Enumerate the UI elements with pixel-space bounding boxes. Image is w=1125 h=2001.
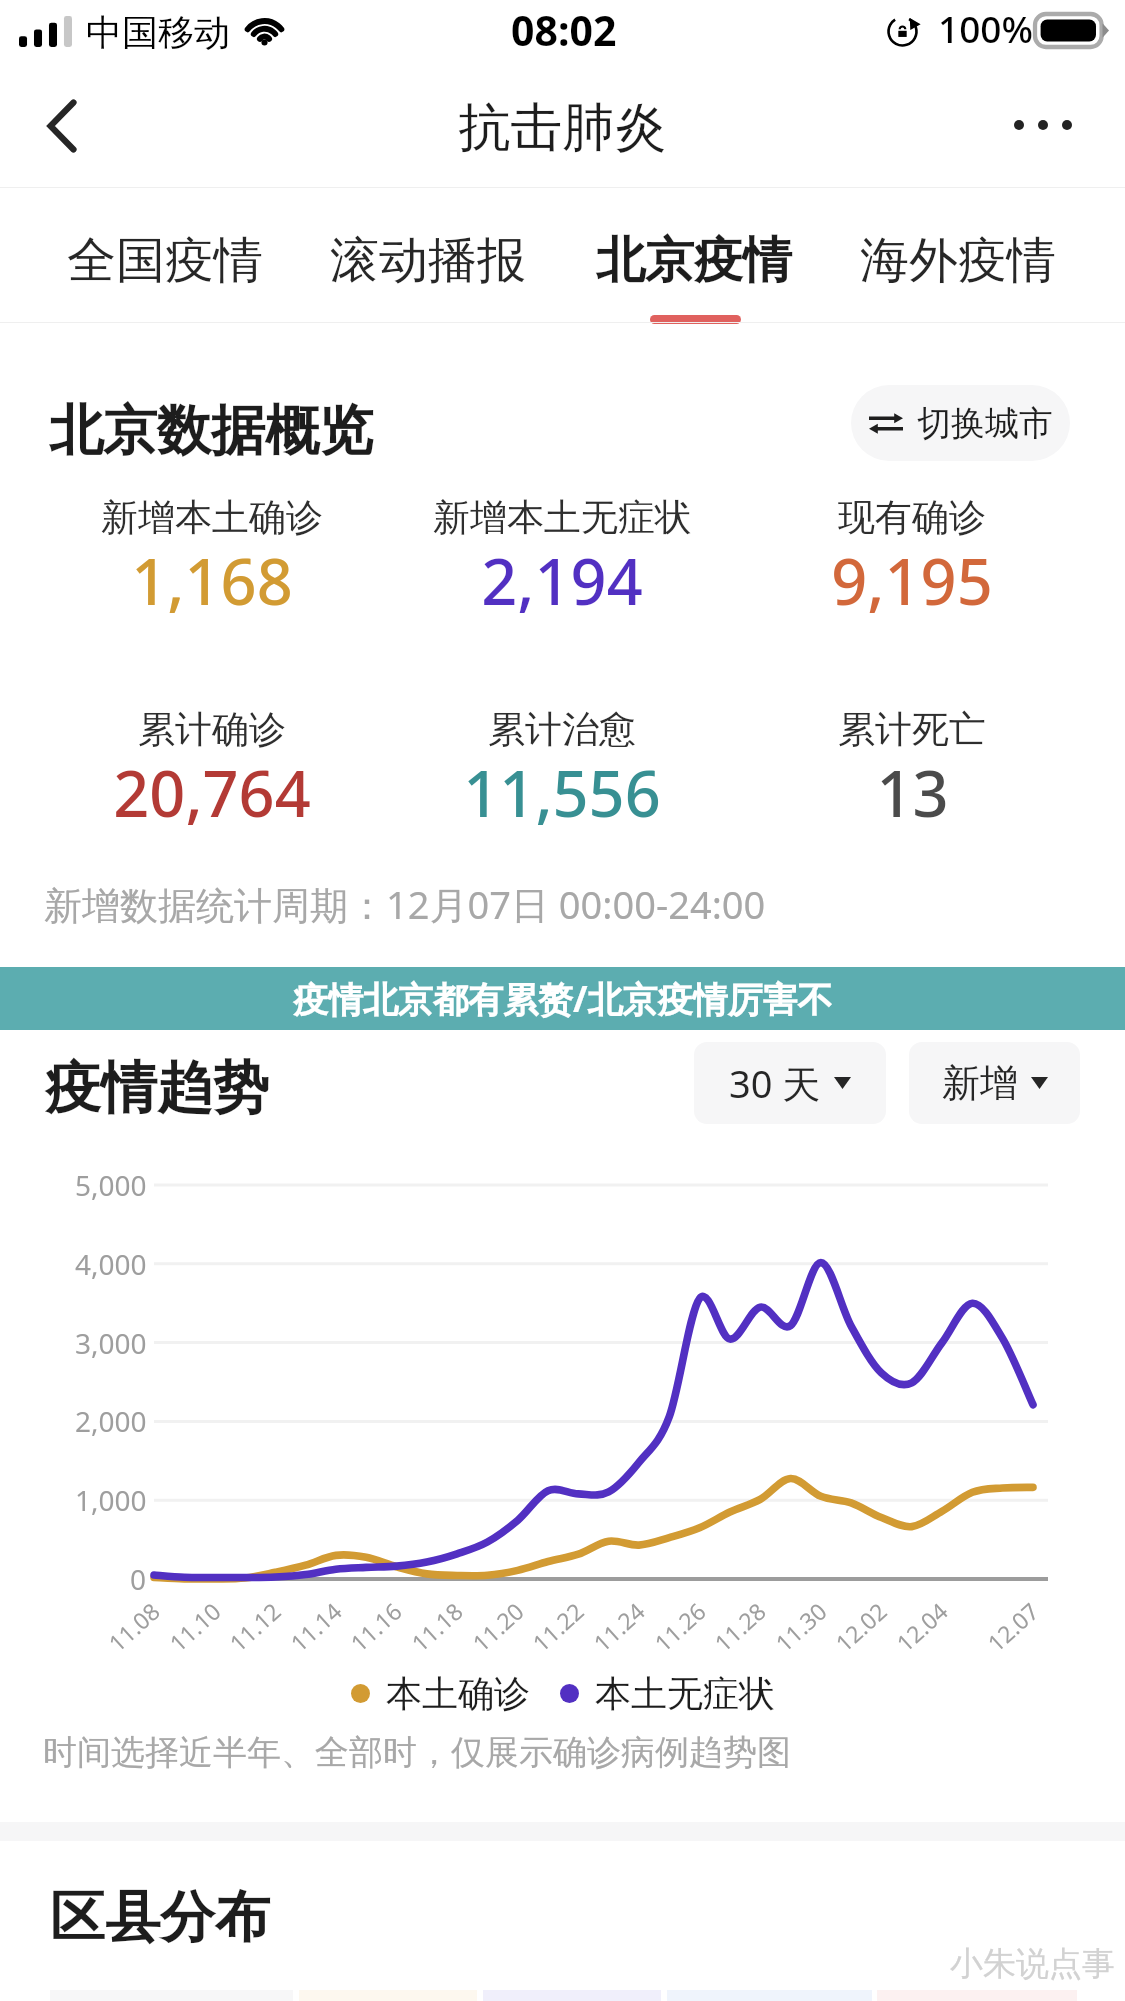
button[interactable]: 切换城市 — [851, 385, 1070, 461]
staticText: 08:02 — [511, 2, 617, 58]
staticText: 11.08 — [101, 1595, 166, 1658]
button[interactable]: 全国疫情 — [35, 198, 295, 322]
staticText: 全国疫情 — [67, 230, 263, 292]
staticText: 11.24 — [586, 1595, 651, 1658]
staticText: 北京数据概览 — [49, 397, 373, 465]
staticText: 新增 — [942, 1059, 1018, 1107]
staticText: 时间选择近半年、全部时，仅展示确诊病例趋势图 — [43, 1731, 791, 1774]
staticText: 4,000 — [75, 1245, 147, 1283]
staticText: 累计确诊 — [138, 706, 286, 753]
staticText: 9,195 — [831, 538, 993, 624]
staticText: 11.28 — [707, 1595, 772, 1658]
button[interactable]: 滚动播报 — [298, 198, 558, 322]
staticText: 11.10 — [162, 1595, 227, 1658]
staticText: 0 — [130, 1560, 147, 1598]
staticText: 12.04 — [889, 1595, 954, 1658]
staticText: 11.20 — [465, 1595, 530, 1658]
staticText: 海外疫情 — [860, 230, 1056, 292]
button[interactable]: 本土确诊 — [351, 1671, 530, 1716]
staticText: 中国移动 — [86, 10, 230, 55]
staticText: 疫情北京都有累赘/北京疫情厉害不 — [293, 975, 833, 1023]
staticText: 区县分布 — [50, 1883, 270, 1952]
staticText: 新增本土确诊 — [101, 494, 323, 541]
staticText: 1,000 — [75, 1481, 147, 1519]
button[interactable]: 新增 — [909, 1042, 1080, 1124]
staticText: 11.14 — [283, 1595, 348, 1658]
staticText: 3,000 — [75, 1324, 147, 1362]
staticText: 11.12 — [222, 1595, 287, 1658]
staticText: 北京疫情 — [596, 230, 792, 292]
staticText: 12.02 — [828, 1595, 893, 1658]
staticText: 5,000 — [75, 1166, 147, 1204]
staticText: 20,764 — [113, 750, 311, 836]
button[interactable]: 海外疫情 — [828, 198, 1088, 322]
staticText: 11.22 — [525, 1595, 590, 1658]
staticText: 11.16 — [343, 1595, 408, 1658]
staticText: 2,000 — [75, 1402, 147, 1440]
staticText: 疫情趋势 — [45, 1053, 269, 1124]
staticText: 累计治愈 — [488, 706, 636, 753]
staticText: 100% — [938, 3, 1034, 53]
staticText: 11.18 — [404, 1595, 469, 1658]
staticText: 13 — [876, 750, 949, 836]
staticText: 累计死亡 — [838, 706, 986, 753]
staticText: 切换城市 — [917, 402, 1053, 445]
staticText: 2,194 — [481, 538, 643, 624]
staticText: 现有确诊 — [838, 494, 986, 541]
staticText: 30 天 — [729, 1057, 821, 1109]
button[interactable]: 30 天 — [694, 1042, 886, 1124]
staticText: 抗击肺炎 — [0, 95, 1125, 161]
staticText: 小朱说点事 — [950, 1943, 1115, 1985]
staticText: 11.30 — [768, 1595, 833, 1658]
staticText: 12.07 — [980, 1595, 1045, 1658]
staticText: 11.26 — [647, 1595, 712, 1658]
staticText: 本土确诊 — [386, 1671, 530, 1716]
button[interactable]: 返回 — [24, 88, 100, 164]
staticText: 1,168 — [131, 538, 293, 624]
staticText: 新增数据统计周期：12月07日 00:00-24:00 — [44, 878, 766, 930]
staticText: 本土无症状 — [595, 1671, 775, 1716]
staticText: 新增本土无症状 — [433, 494, 692, 541]
staticText: 滚动播报 — [330, 230, 526, 292]
staticText: 11,556 — [463, 750, 661, 836]
button[interactable]: 更多 — [994, 93, 1092, 157]
button[interactable]: 北京疫情 — [564, 198, 824, 322]
button[interactable]: 本土无症状 — [560, 1671, 775, 1716]
